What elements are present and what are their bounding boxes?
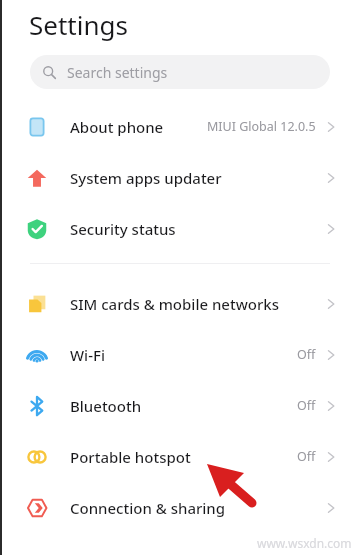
- staticText: Search settings: [67, 63, 168, 82]
- staticText: MIUI Global 12.0.5: [207, 118, 316, 135]
- button[interactable]: About phone: [0, 101, 362, 152]
- staticText: Off: [297, 397, 316, 414]
- staticText: Portable hotspot: [70, 447, 191, 467]
- button[interactable]: Bluetooth: [0, 380, 362, 431]
- staticText: Wi-Fi: [70, 345, 105, 365]
- button[interactable]: Portable hotspot: [0, 431, 362, 482]
- staticText: SIM cards & mobile networks: [70, 294, 279, 314]
- staticText: Connection & sharing: [70, 498, 226, 518]
- staticText: Bluetooth: [70, 396, 142, 416]
- staticText: Security status: [70, 219, 176, 239]
- staticText: Settings: [29, 7, 128, 42]
- button[interactable]: Wi-Fi: [0, 329, 362, 380]
- button[interactable]: Search settings: [30, 55, 330, 89]
- staticText: www.wsxdn.com: [257, 535, 352, 551]
- staticText: System apps updater: [70, 168, 222, 188]
- button[interactable]: SIM cards & mobile networks: [0, 278, 362, 329]
- staticText: Off: [297, 346, 316, 363]
- staticText: About phone: [70, 117, 164, 137]
- button[interactable]: Connection & sharing: [0, 482, 362, 533]
- button[interactable]: System apps updater: [0, 152, 362, 203]
- button[interactable]: Security status: [0, 203, 362, 254]
- staticText: Off: [297, 448, 316, 465]
